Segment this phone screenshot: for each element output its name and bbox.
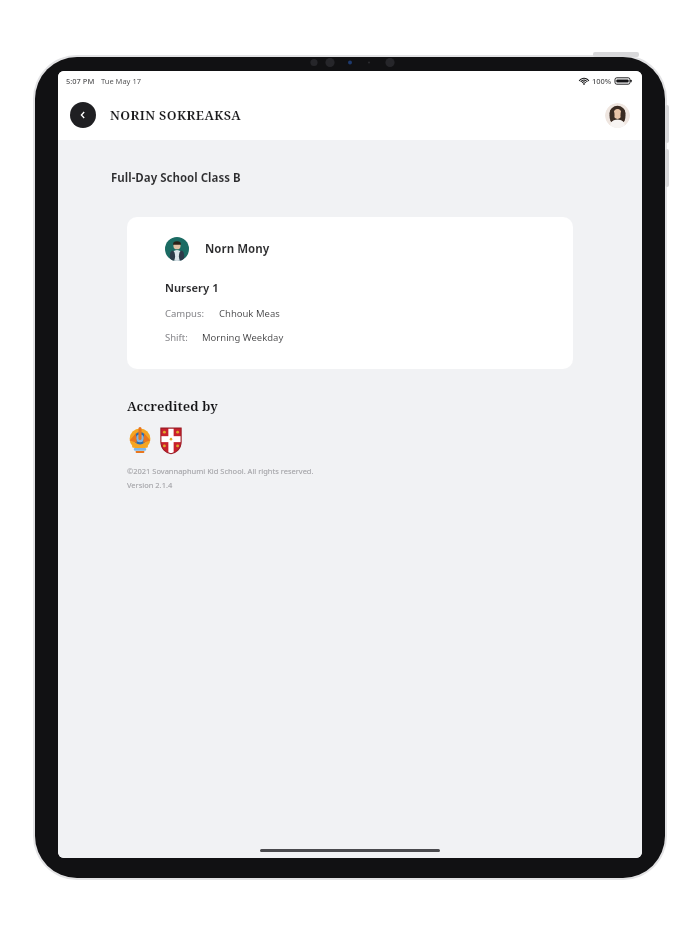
staticText: Campus: [165,307,205,320]
staticText: Morning Weekday [202,331,284,344]
staticText: NORIN SOKREAKSA [110,107,242,124]
staticText: Version 2.1.4 [127,480,173,490]
staticText: Nursery 1 [165,280,219,295]
staticText: 5:07 PM [66,76,95,86]
staticText: Chhouk Meas [219,307,280,320]
button[interactable]: Profile [605,103,630,128]
staticText: Full-Day School Class B [111,170,241,186]
button[interactable]: Back [70,102,96,128]
staticText: 100% [592,76,612,86]
staticText: Shift: [165,331,188,344]
staticText: ©2021 Sovannaphumi Kid School. All right… [127,466,314,476]
staticText: Accredited by [127,397,218,415]
staticText: Norn Mony [205,241,270,257]
button[interactable]: Norn Mony [127,217,573,369]
staticText: Tue May 17 [101,76,141,86]
